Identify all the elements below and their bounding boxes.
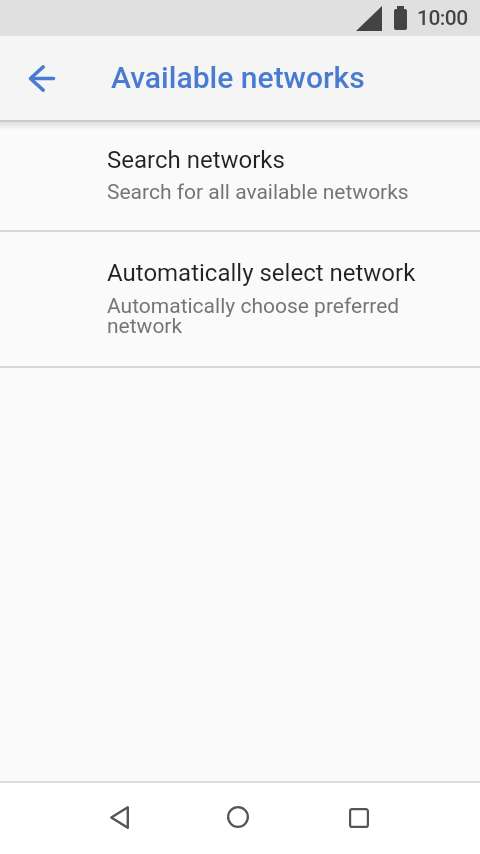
staticText: Automatically select network xyxy=(107,259,416,287)
button[interactable] xyxy=(335,794,383,842)
staticText: Search for all available networks xyxy=(107,180,409,205)
button[interactable] xyxy=(95,793,143,841)
button[interactable] xyxy=(214,793,262,841)
button[interactable]: Automatically select network xyxy=(0,232,480,366)
button[interactable]: Search networks xyxy=(0,130,480,230)
staticText: network xyxy=(107,314,183,339)
staticText: 10:00 xyxy=(417,6,468,31)
staticText: Available networks xyxy=(111,60,365,95)
button[interactable] xyxy=(18,54,66,102)
staticText: Automatically choose preferred xyxy=(107,294,400,319)
staticText: Search networks xyxy=(107,146,285,174)
